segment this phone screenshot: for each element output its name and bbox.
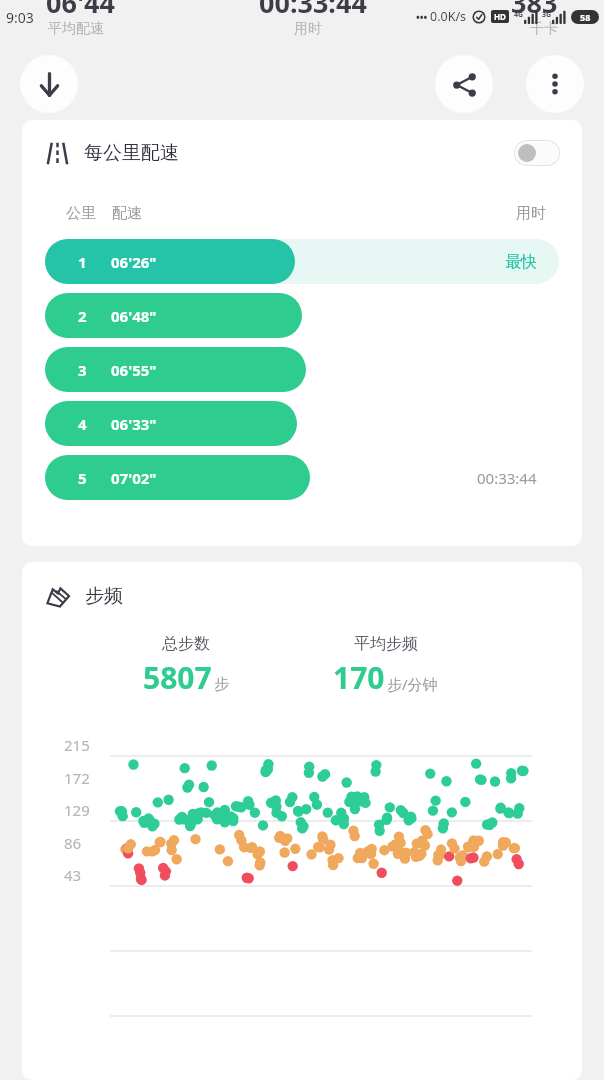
staticText: 00:33:44 <box>259 0 367 14</box>
staticText: 0.0K/s <box>430 8 467 25</box>
staticText: 58 <box>580 11 591 23</box>
button[interactable]: 1 <box>45 239 559 284</box>
staticText: 06'33" <box>111 414 157 434</box>
staticText: 平均步频 <box>354 634 418 654</box>
staticText: 用时 <box>516 204 546 223</box>
staticText: 步频 <box>85 584 123 608</box>
button[interactable]: 5 <box>45 455 559 500</box>
staticText: 千卡 <box>530 20 558 38</box>
staticText: 06'44 <box>46 0 115 14</box>
staticText: 06'48" <box>111 306 157 326</box>
staticText: 00:33:44 <box>477 468 537 488</box>
staticText: 3 <box>78 360 87 380</box>
staticText: 5 <box>78 468 87 488</box>
staticText: 2 <box>78 306 87 326</box>
staticText: 383 <box>511 0 558 14</box>
staticText: 最快 <box>505 252 537 272</box>
button[interactable]: Download <box>20 55 78 113</box>
staticText: 170 <box>333 657 385 698</box>
staticText: 用时 <box>294 20 322 38</box>
staticText: 215 <box>64 735 90 755</box>
button[interactable]: 2 <box>45 293 559 338</box>
button[interactable]: 3 <box>45 347 559 392</box>
staticText: 步/分钟 <box>387 674 438 694</box>
staticText: 1 <box>78 252 87 272</box>
staticText: 43 <box>64 865 82 885</box>
button[interactable]: Toggle per kilometre pace <box>514 140 560 166</box>
staticText: 172 <box>64 768 90 788</box>
staticText: 步 <box>214 675 229 694</box>
staticText: 总步数 <box>162 634 210 654</box>
staticText: 公里 <box>66 204 96 223</box>
button[interactable]: 4 <box>45 401 559 446</box>
staticText: 5807 <box>143 657 212 698</box>
staticText: 06'26" <box>111 252 157 272</box>
staticText: 配速 <box>112 204 142 223</box>
staticText: 3G <box>542 10 552 20</box>
staticText: 06'55" <box>111 360 157 380</box>
staticText: 平均配速 <box>48 20 104 38</box>
staticText: 4 <box>78 414 87 434</box>
staticText: HD <box>494 11 506 22</box>
staticText: 4G <box>514 10 524 20</box>
staticText: 07'02" <box>111 468 157 488</box>
staticText: 每公里配速 <box>84 141 179 165</box>
staticText: 86 <box>64 833 82 853</box>
staticText: 129 <box>64 800 90 820</box>
staticText: 9:03 <box>6 8 34 27</box>
staticText: ••• <box>416 10 428 24</box>
button[interactable]: Share <box>435 55 493 113</box>
button[interactable]: More options <box>526 55 584 113</box>
